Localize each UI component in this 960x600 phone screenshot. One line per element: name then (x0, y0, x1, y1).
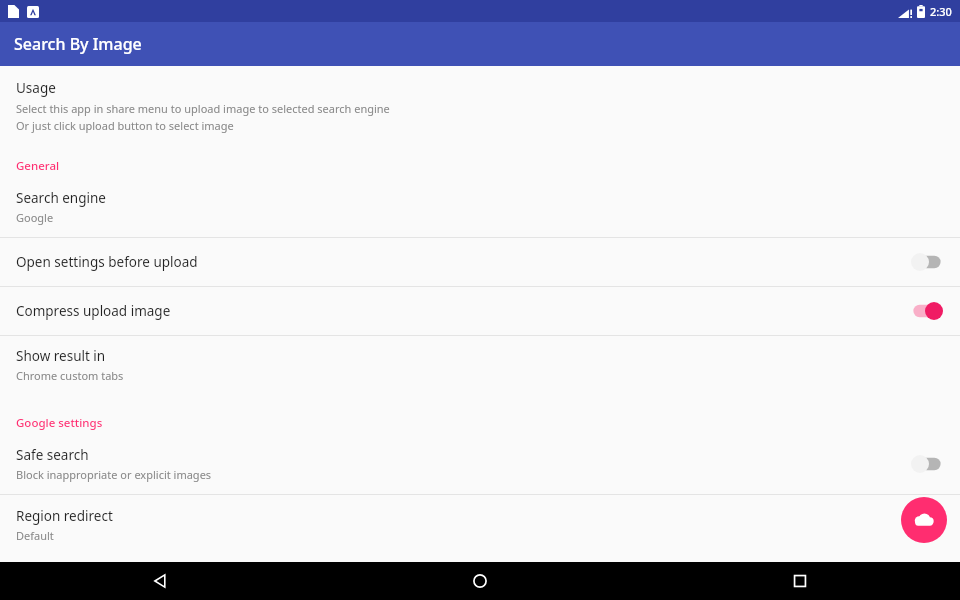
staticText: Or just click upload button to select im… (16, 118, 234, 133)
button[interactable]: Back (0, 562, 320, 600)
button[interactable]: Safe search (0, 435, 960, 494)
staticText: Block inappropriate or explicit images (16, 467, 212, 482)
button[interactable]: Home (320, 562, 640, 600)
button[interactable]: Open settings before upload (0, 238, 960, 286)
staticText: Chrome custom tabs (16, 368, 124, 383)
staticText: Open settings before upload (16, 253, 198, 271)
staticText: Default (16, 528, 54, 543)
staticText: Select this app in share menu to upload … (16, 101, 390, 116)
button[interactable]: Compress upload image (0, 287, 960, 335)
staticText: Show result in (16, 347, 106, 365)
button[interactable]: Recent apps (640, 562, 960, 600)
button[interactable]: Usage (0, 66, 960, 141)
staticText: General (16, 158, 60, 174)
staticText: Search By Image (14, 33, 142, 55)
staticText: Region redirect (16, 507, 113, 525)
button[interactable]: Toggle on (910, 301, 944, 321)
button[interactable]: Show result in (0, 336, 960, 395)
staticText: Google settings (16, 415, 103, 431)
button[interactable]: Toggle off (910, 454, 944, 474)
button[interactable]: Toggle off (910, 252, 944, 272)
staticText: Safe search (16, 446, 89, 464)
button[interactable]: Search engine (0, 178, 960, 237)
staticText: 2:30 (930, 4, 952, 19)
button[interactable]: Region redirect (0, 495, 960, 555)
button[interactable]: Upload image (901, 497, 947, 543)
staticText: Compress upload image (16, 302, 171, 320)
staticText: Google (16, 210, 54, 225)
staticText: Usage (16, 79, 56, 97)
staticText: Search engine (16, 189, 106, 207)
